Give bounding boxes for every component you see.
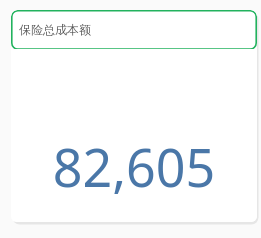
staticText: 82,605	[11, 131, 257, 202]
button[interactable]: 保险总成本额	[11, 10, 257, 222]
button[interactable]: 保险总成本额	[11, 10, 257, 49]
staticText: 保险总成本额	[19, 22, 91, 37]
